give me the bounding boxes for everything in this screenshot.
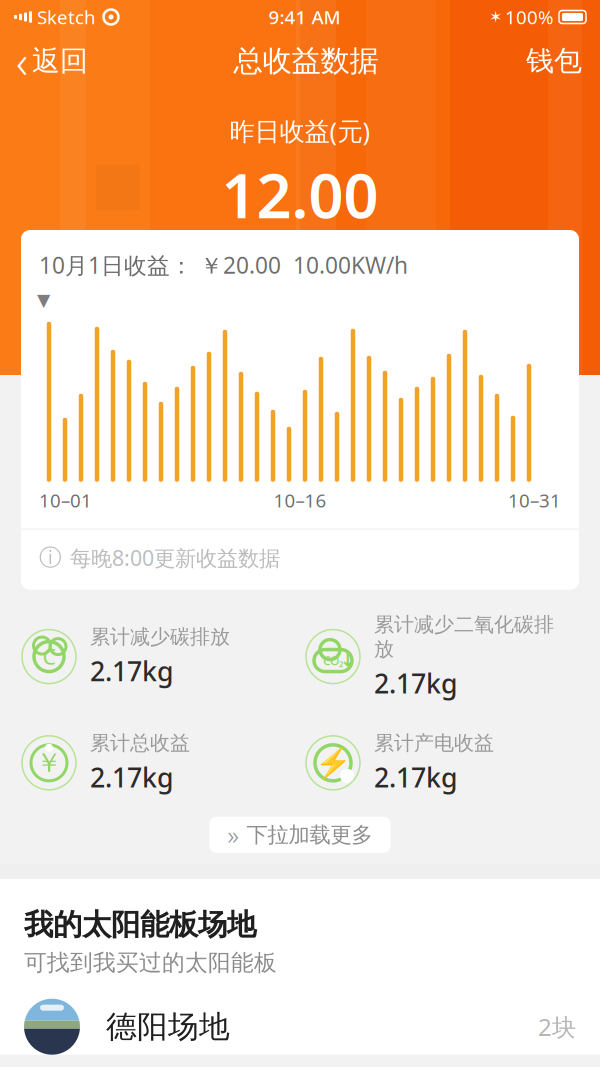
staticText: 累计产电收益 bbox=[374, 731, 494, 755]
staticText: 累计总收益 bbox=[90, 731, 190, 755]
staticText: 10–01 bbox=[39, 488, 92, 513]
staticText: 2.17kg bbox=[90, 759, 174, 795]
staticText: CO₂ bbox=[323, 653, 343, 668]
staticText: ‹ bbox=[16, 31, 28, 91]
button[interactable]: CO₂ bbox=[306, 604, 578, 709]
staticText: ↓ bbox=[339, 648, 356, 671]
staticText: ⚡ bbox=[314, 746, 351, 780]
staticText: 10月1日收益： ￥20.00 10.00KW/h bbox=[39, 250, 408, 280]
staticText: ￥ bbox=[35, 746, 62, 779]
staticText: ⓘ bbox=[39, 544, 62, 572]
staticText: Sketch bbox=[37, 5, 96, 29]
button[interactable]: ￥ bbox=[22, 723, 284, 803]
button[interactable]: C bbox=[22, 617, 284, 697]
staticText: ▼ bbox=[37, 290, 50, 310]
staticText: 钱包 bbox=[526, 44, 582, 78]
staticText: 9:41 AM bbox=[268, 5, 340, 29]
staticText: 每晚8:00更新收益数据 bbox=[70, 544, 280, 572]
staticText: 10–16 bbox=[273, 488, 326, 513]
staticText: 返回 bbox=[32, 44, 88, 78]
staticText: 下拉加载更多 bbox=[246, 822, 372, 848]
button[interactable]: » bbox=[209, 817, 390, 853]
staticText: 2块 bbox=[538, 1011, 576, 1043]
button[interactable]: 钱包 bbox=[508, 34, 600, 88]
staticText: 2.17kg bbox=[374, 665, 458, 701]
staticText: 我的太阳能板场地 bbox=[24, 907, 256, 943]
staticText: 德阳场地 bbox=[106, 1008, 230, 1046]
staticText: 累计减少二氧化碳排放 bbox=[374, 612, 554, 661]
staticText: C bbox=[42, 642, 55, 671]
staticText: ✶ bbox=[489, 8, 502, 26]
staticText: 累计减少碳排放 bbox=[90, 625, 230, 649]
staticText: 昨日收益(元) bbox=[229, 114, 370, 148]
button[interactable]: ⚡ bbox=[306, 723, 578, 803]
staticText: 2.17kg bbox=[374, 759, 458, 795]
staticText: 2.17kg bbox=[90, 653, 174, 689]
staticText: 100% bbox=[505, 5, 554, 29]
button[interactable]: ‹ bbox=[0, 34, 104, 88]
staticText: 可找到我买过的太阳能板 bbox=[24, 949, 277, 977]
staticText: » bbox=[227, 818, 238, 852]
button[interactable]: 德阳场地 bbox=[24, 977, 576, 1055]
staticText: 10–31 bbox=[508, 488, 561, 513]
staticText: 12.00 bbox=[221, 154, 378, 235]
staticText: 总收益数据 bbox=[233, 43, 378, 79]
